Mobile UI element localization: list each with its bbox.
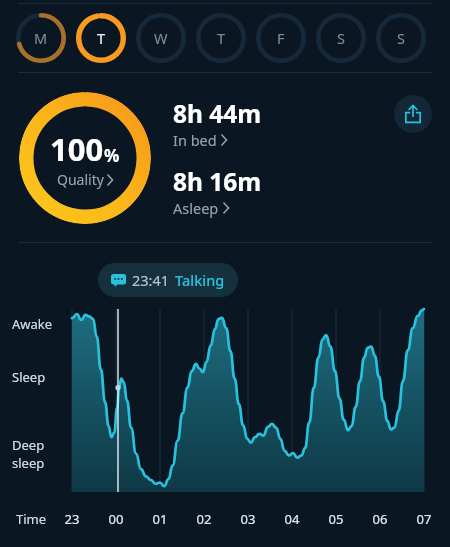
staticText: Quality bbox=[57, 170, 104, 189]
staticText: S bbox=[337, 28, 345, 48]
staticText: Sleep bbox=[12, 368, 46, 386]
staticText: 23 bbox=[61, 510, 83, 528]
staticText: 02 bbox=[193, 510, 215, 528]
staticText: In bed bbox=[173, 130, 217, 150]
staticText: W bbox=[154, 28, 168, 48]
staticText: 8h 16m bbox=[173, 165, 262, 198]
button[interactable]: 100 bbox=[19, 92, 151, 224]
staticText: Awake bbox=[12, 315, 53, 333]
button[interactable]: S bbox=[371, 8, 431, 68]
button[interactable]: 23:41 bbox=[98, 263, 238, 297]
staticText: 23:41 bbox=[132, 270, 170, 290]
button[interactable]: F bbox=[251, 8, 311, 68]
staticText: 100 bbox=[50, 128, 104, 170]
staticText: Deep bbox=[12, 436, 45, 454]
button[interactable]: M bbox=[11, 8, 71, 68]
button[interactable]: W bbox=[131, 8, 191, 68]
button[interactable]: S bbox=[311, 8, 371, 68]
button[interactable]: Share bbox=[394, 95, 432, 133]
staticText: sleep bbox=[12, 454, 45, 472]
staticText: 06 bbox=[369, 510, 391, 528]
staticText: 07 bbox=[413, 510, 435, 528]
button[interactable]: Asleep bbox=[173, 198, 229, 218]
staticText: 00 bbox=[105, 510, 127, 528]
staticText: 05 bbox=[325, 510, 347, 528]
staticText: F bbox=[277, 28, 285, 48]
staticText: 03 bbox=[237, 510, 259, 528]
staticText: Talking bbox=[175, 270, 225, 290]
button[interactable]: T bbox=[191, 8, 251, 68]
staticText: 8h 44m bbox=[173, 97, 262, 130]
staticText: T bbox=[97, 28, 106, 48]
staticText: S bbox=[397, 28, 405, 48]
button[interactable]: T bbox=[71, 8, 131, 68]
staticText: Asleep bbox=[173, 198, 219, 218]
staticText: 01 bbox=[149, 510, 171, 528]
staticText: % bbox=[104, 144, 120, 167]
staticText: M bbox=[34, 28, 48, 48]
button[interactable]: In bed bbox=[173, 130, 227, 150]
staticText: 04 bbox=[281, 510, 303, 528]
staticText: T bbox=[217, 28, 226, 48]
staticText: Time bbox=[16, 510, 47, 528]
